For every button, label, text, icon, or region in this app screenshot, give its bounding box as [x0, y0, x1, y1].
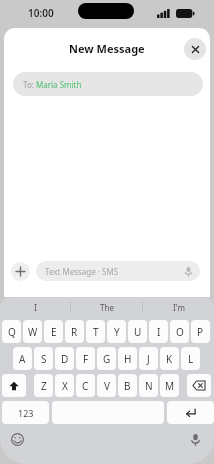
button[interactable]: I — [149, 320, 168, 343]
staticText: 123 — [18, 407, 34, 419]
button[interactable]: 123 — [2, 401, 49, 424]
staticText: W — [28, 325, 38, 339]
staticText: D — [61, 352, 69, 366]
button[interactable]: Z — [34, 374, 53, 397]
button[interactable]: Dictation — [188, 432, 203, 447]
staticText: Y — [114, 325, 120, 339]
staticText: Q — [8, 325, 16, 339]
staticText: New Message — [69, 41, 145, 56]
button[interactable]: V — [97, 374, 116, 397]
button[interactable]: The — [71, 297, 142, 318]
button[interactable]: Return — [167, 401, 214, 424]
staticText: G — [103, 352, 111, 366]
button[interactable]: To: — [13, 72, 203, 96]
staticText: Maria Smith — [36, 79, 82, 90]
button[interactable]: D — [55, 347, 74, 370]
button[interactable]: C — [76, 374, 95, 397]
button[interactable]: U — [128, 320, 147, 343]
button[interactable]: N — [139, 374, 158, 397]
staticText: E — [51, 325, 57, 339]
staticText: L — [188, 352, 194, 366]
button[interactable]: Close — [184, 38, 206, 60]
button[interactable]: W — [23, 320, 42, 343]
staticText: Z — [41, 379, 47, 393]
staticText: 10:00 — [28, 6, 54, 20]
staticText: A — [19, 352, 26, 366]
button[interactable]: Text Message · SMS — [36, 261, 200, 281]
button[interactable]: B — [118, 374, 137, 397]
staticText: N — [145, 379, 153, 393]
staticText: F — [83, 352, 89, 366]
staticText: I — [157, 325, 161, 339]
button[interactable]: T — [86, 320, 105, 343]
button[interactable]: P — [191, 320, 210, 343]
button[interactable]: A — [13, 347, 32, 370]
staticText: I'm — [173, 302, 185, 313]
staticText: The — [100, 302, 114, 313]
button[interactable]: X — [55, 374, 74, 397]
button[interactable]: S — [34, 347, 53, 370]
button[interactable]: Backspace — [187, 374, 211, 397]
button[interactable]: M — [160, 374, 179, 397]
button[interactable]: Voice message — [183, 266, 194, 277]
staticText: X — [62, 379, 68, 393]
staticText: C — [82, 379, 89, 393]
staticText: H — [124, 352, 132, 366]
button[interactable]: K — [160, 347, 179, 370]
button[interactable]: Shift — [2, 374, 26, 397]
button[interactable]: Emoji — [10, 432, 25, 447]
staticText: K — [166, 352, 173, 366]
button[interactable]: Y — [107, 320, 126, 343]
button[interactable]: I — [0, 297, 70, 318]
staticText: U — [134, 325, 142, 339]
button[interactable]: L — [181, 347, 200, 370]
button[interactable]: Add attachment — [11, 262, 30, 281]
staticText: B — [124, 379, 131, 393]
button[interactable]: E — [44, 320, 63, 343]
button[interactable]: J — [139, 347, 158, 370]
staticText: To: — [23, 79, 36, 90]
staticText: M — [165, 379, 175, 393]
button[interactable]: F — [76, 347, 95, 370]
button[interactable]: O — [170, 320, 189, 343]
button[interactable]: I'm — [143, 297, 214, 318]
button[interactable]: R — [65, 320, 84, 343]
staticText: P — [197, 325, 204, 339]
button[interactable]: Q — [2, 320, 21, 343]
staticText: I — [34, 302, 37, 313]
staticText: J — [147, 352, 150, 366]
button[interactable]: G — [97, 347, 116, 370]
staticText: T — [93, 325, 99, 339]
button[interactable]: H — [118, 347, 137, 370]
staticText: O — [176, 325, 184, 339]
staticText: R — [71, 325, 78, 339]
staticText: V — [104, 379, 110, 393]
staticText: Text Message · SMS — [45, 266, 119, 277]
staticText: S — [41, 352, 47, 366]
